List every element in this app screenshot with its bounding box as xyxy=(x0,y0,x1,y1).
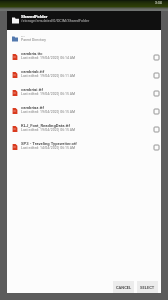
button[interactable]: cambriaz.ttf xyxy=(7,102,161,120)
staticText: Parent Directory xyxy=(21,38,47,42)
button[interactable]: cambriai.ttf xyxy=(7,84,161,102)
button[interactable]: Select cambriab.ttf xyxy=(151,70,161,80)
staticText: CANCEL xyxy=(116,285,132,290)
staticText: cambriaz.ttf xyxy=(21,105,44,110)
staticText: Last edited: 19/04/2020, 06:11 AM xyxy=(21,74,76,78)
staticText: cambriab.ttf xyxy=(21,69,45,74)
button[interactable]: CANCEL xyxy=(113,281,134,293)
staticText: SP3 - Traveling Typewriter.otf xyxy=(21,141,77,146)
staticText: SharedFolder xyxy=(21,14,48,19)
staticText: cambria.ttc xyxy=(21,51,43,56)
button[interactable]: SELECT xyxy=(137,281,158,293)
button[interactable]: SP3 - Traveling Typewriter.otf xyxy=(7,138,161,156)
staticText: Last edited: 14/04/2020, 06:15 AM xyxy=(21,146,76,150)
button[interactable]: Select cambriaz.ttf xyxy=(151,106,161,116)
button[interactable]: cambria.ttc xyxy=(7,48,161,66)
button[interactable]: cambriab.ttf xyxy=(7,66,161,84)
button[interactable]: Select KLJ_Font_ReadingData.ttf xyxy=(151,124,161,134)
staticText: /storage/emulated/0/DCIM/SharedFolder xyxy=(21,19,90,23)
staticText: cambriai.ttf xyxy=(21,87,43,92)
staticText: Last edited: 19/04/2020, 06:15 AM xyxy=(21,110,76,114)
staticText: ... xyxy=(21,33,25,38)
staticText: SELECT xyxy=(140,285,155,290)
button[interactable]: KLJ_Font_ReadingData.ttf xyxy=(7,120,161,138)
staticText: Last edited: 19/04/2020, 06:15 AM xyxy=(21,128,76,132)
staticText: 3:34 xyxy=(155,1,162,5)
staticText: Last edited: 19/04/2020, 06:15 AM xyxy=(21,92,76,96)
staticText: Last edited: 19/04/2020, 06:14 AM xyxy=(21,56,76,60)
button[interactable]: Select cambria.ttc xyxy=(151,52,161,62)
button[interactable]: Select SP3 - Traveling Typewriter.otf xyxy=(151,142,161,152)
button[interactable]: Select cambriai.ttf xyxy=(151,88,161,98)
staticText: KLJ_Font_ReadingData.ttf xyxy=(21,123,70,128)
button[interactable]: ... xyxy=(7,30,161,48)
